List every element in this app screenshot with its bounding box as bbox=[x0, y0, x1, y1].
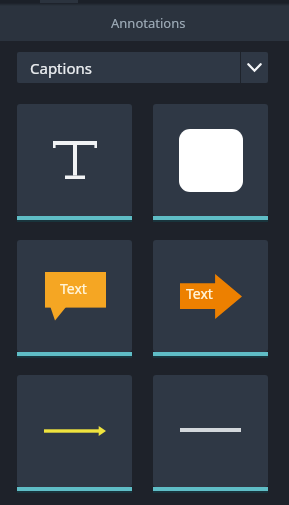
button[interactable]: Line bbox=[153, 375, 268, 493]
button[interactable]: Arrow callout bbox=[153, 240, 268, 358]
button[interactable]: Yellow arrow bbox=[17, 375, 132, 493]
button[interactable]: Rounded rectangle callout bbox=[153, 104, 268, 222]
staticText: Text bbox=[60, 279, 87, 298]
button[interactable]: Captions bbox=[17, 52, 268, 83]
button[interactable]: Text annotation bbox=[17, 104, 132, 222]
staticText: Annotations bbox=[111, 14, 186, 32]
button[interactable]: Speech bubble callout bbox=[17, 240, 132, 358]
staticText: Captions bbox=[30, 58, 92, 78]
staticText: Text bbox=[186, 284, 213, 303]
